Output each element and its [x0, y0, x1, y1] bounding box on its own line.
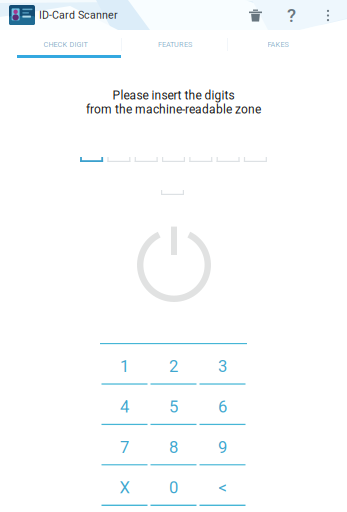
button[interactable]: FAKES [228, 30, 347, 59]
button[interactable]: 0 [149, 466, 198, 506]
staticText: < [218, 478, 226, 497]
button[interactable]: 8 [149, 425, 198, 466]
staticText: 5 [169, 397, 178, 416]
staticText: X [119, 478, 129, 497]
staticText: 2 [169, 357, 178, 376]
button[interactable]: More options [315, 2, 341, 29]
staticText: from the machine-readable zone [86, 102, 261, 117]
button[interactable]: 9 [198, 425, 247, 466]
button[interactable]: FEATURES [121, 30, 228, 59]
staticText: 1 [120, 357, 129, 376]
button[interactable]: X [100, 466, 149, 506]
button[interactable]: 3 [198, 344, 247, 385]
staticText: Please insert the digits [112, 88, 234, 103]
staticText: 8 [169, 437, 178, 457]
button[interactable]: 6 [198, 385, 247, 425]
button[interactable]: 1 [100, 344, 149, 385]
staticText: CHECK DIGIT [43, 40, 87, 49]
staticText: FAKES [267, 40, 288, 49]
button[interactable]: Delete [242, 2, 269, 29]
staticText: FEATURES [158, 40, 192, 49]
staticText: 4 [120, 397, 129, 416]
staticText: 3 [218, 357, 227, 376]
button[interactable]: Help [278, 2, 305, 29]
button[interactable]: 7 [100, 425, 149, 466]
button[interactable]: 4 [100, 385, 149, 425]
staticText: 7 [120, 437, 129, 457]
button[interactable]: < [198, 466, 247, 506]
button[interactable]: CHECK DIGIT [0, 30, 121, 59]
button[interactable]: 2 [149, 344, 198, 385]
staticText: 6 [218, 397, 227, 416]
staticText: ID-Card Scanner [39, 9, 118, 21]
staticText: 9 [218, 437, 227, 457]
staticText: 0 [169, 478, 178, 497]
button[interactable]: 5 [149, 385, 198, 425]
staticText: ? [287, 5, 296, 26]
